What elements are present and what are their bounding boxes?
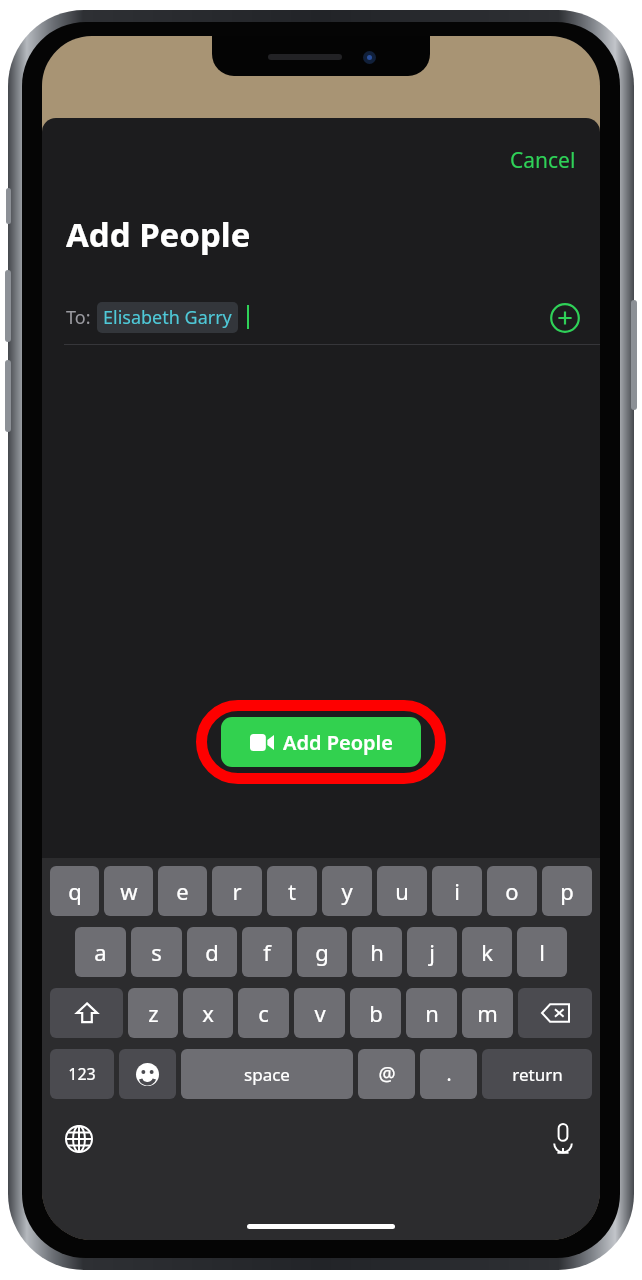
staticText: u: [395, 876, 409, 906]
button[interactable]: Add contact: [547, 300, 583, 336]
button[interactable]: Change keyboard: [56, 1116, 102, 1162]
staticText: v: [314, 998, 326, 1028]
button[interactable]: c: [238, 988, 289, 1038]
staticText: k: [481, 937, 493, 967]
button[interactable]: Cancel: [500, 140, 586, 181]
button[interactable]: r: [212, 866, 262, 916]
staticText: t: [288, 876, 296, 906]
button[interactable]: .: [420, 1049, 477, 1099]
button[interactable]: Add People: [221, 717, 421, 767]
staticText: r: [232, 876, 242, 906]
button[interactable]: j: [407, 927, 457, 977]
staticText: i: [454, 876, 460, 906]
staticText: o: [505, 876, 519, 906]
staticText: To:: [66, 305, 91, 330]
button[interactable]: Backspace: [518, 988, 592, 1038]
staticText: s: [151, 937, 162, 967]
staticText: j: [429, 937, 435, 967]
button[interactable]: g: [297, 927, 347, 977]
button[interactable]: l: [517, 927, 567, 977]
staticText: l: [539, 937, 545, 967]
staticText: y: [341, 876, 353, 906]
button[interactable]: m: [462, 988, 513, 1038]
staticText: b: [369, 998, 383, 1028]
staticText: d: [205, 937, 219, 967]
button[interactable]: v: [294, 988, 345, 1038]
staticText: e: [176, 876, 189, 906]
button[interactable]: o: [487, 866, 537, 916]
staticText: Elisabeth Garry: [103, 305, 232, 330]
button[interactable]: Emoji: [119, 1049, 176, 1099]
staticText: 123: [68, 1063, 96, 1085]
staticText: @: [378, 1061, 396, 1087]
button[interactable]: f: [242, 927, 292, 977]
button[interactable]: d: [187, 927, 237, 977]
staticText: a: [94, 937, 107, 967]
button[interactable]: q: [50, 866, 99, 916]
button[interactable]: e: [158, 866, 207, 916]
button[interactable]: i: [432, 866, 482, 916]
other: Side button: [631, 300, 637, 410]
staticText: return: [512, 1063, 563, 1086]
button[interactable]: s: [131, 927, 182, 977]
button[interactable]: y: [322, 866, 372, 916]
button[interactable]: return: [482, 1049, 592, 1099]
staticText: g: [315, 937, 329, 967]
button[interactable]: h: [352, 927, 402, 977]
staticText: .: [446, 1061, 452, 1087]
staticText: q: [68, 876, 82, 906]
staticText: z: [148, 998, 159, 1028]
button[interactable]: p: [542, 866, 592, 916]
staticText: n: [425, 998, 439, 1028]
button[interactable]: k: [462, 927, 512, 977]
staticText: f: [263, 937, 271, 967]
button[interactable]: u: [377, 866, 427, 916]
button[interactable]: w: [104, 866, 153, 916]
button[interactable]: a: [75, 927, 126, 977]
staticText: Add People: [283, 729, 393, 756]
other: Volume up: [5, 270, 11, 342]
button[interactable]: b: [350, 988, 401, 1038]
button[interactable]: space: [181, 1049, 353, 1099]
staticText: c: [258, 998, 269, 1028]
button[interactable]: Shift: [50, 988, 123, 1038]
staticText: w: [120, 876, 138, 906]
other: Volume down: [5, 360, 11, 432]
staticText: h: [370, 937, 384, 967]
staticText: m: [477, 998, 498, 1028]
button[interactable]: x: [183, 988, 233, 1038]
staticText: Add People: [66, 212, 251, 257]
staticText: x: [202, 998, 214, 1028]
button[interactable]: n: [406, 988, 457, 1038]
staticText: space: [244, 1063, 290, 1086]
button[interactable]: Dictate: [540, 1116, 586, 1162]
button[interactable]: z: [128, 988, 178, 1038]
staticText: p: [560, 876, 574, 906]
button[interactable]: Elisabeth Garry: [97, 302, 238, 333]
other: Silent switch: [6, 188, 11, 224]
button[interactable]: @: [358, 1049, 415, 1099]
staticText: Cancel: [510, 146, 576, 175]
button[interactable]: t: [267, 866, 317, 916]
button[interactable]: 123: [50, 1049, 114, 1099]
